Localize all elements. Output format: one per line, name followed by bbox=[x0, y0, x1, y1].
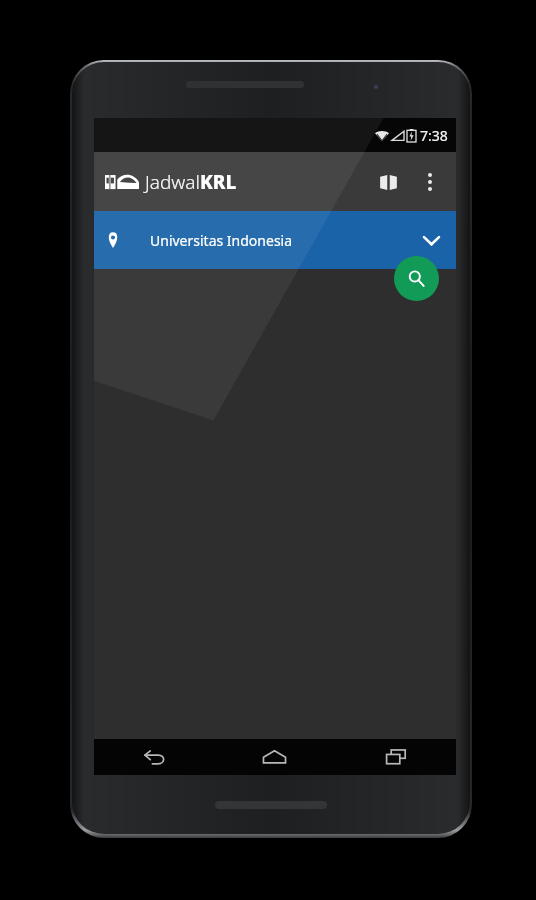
button[interactable]: Choose station bbox=[410, 219, 452, 261]
button[interactable]: More options bbox=[410, 162, 450, 202]
button[interactable]: Home bbox=[214, 739, 335, 775]
button[interactable]: Recent apps bbox=[335, 739, 456, 775]
staticText: KRL bbox=[200, 169, 237, 195]
button[interactable]: Universitas Indonesia bbox=[94, 211, 456, 269]
button[interactable]: Map bbox=[366, 160, 410, 204]
button[interactable]: Search bbox=[394, 256, 439, 301]
staticText: 7:38 bbox=[420, 126, 448, 145]
staticText: Universitas Indonesia bbox=[150, 231, 293, 250]
button[interactable]: Back bbox=[94, 739, 214, 775]
staticText: Jadwal bbox=[145, 169, 200, 195]
